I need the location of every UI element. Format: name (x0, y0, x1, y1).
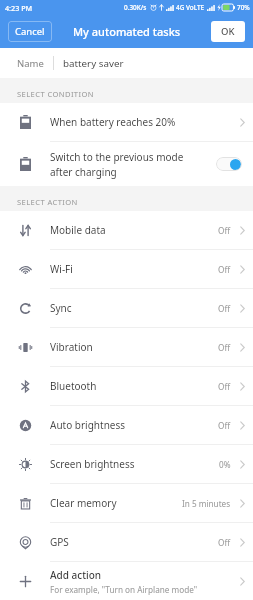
staticText: When battery reaches 20% (50, 115, 231, 129)
staticText: Screen brightness (50, 457, 219, 471)
staticText: Vibration (50, 340, 218, 354)
staticText: My automated tasks (73, 24, 181, 39)
staticText: 0.30K/s (124, 3, 147, 12)
button[interactable]: Clear memory (0, 484, 253, 522)
button[interactable]: Add action (0, 562, 253, 600)
button[interactable]: When battery reaches 20% (0, 103, 253, 141)
staticText: Add action (50, 568, 102, 582)
button[interactable]: Sync (0, 289, 253, 327)
staticText: GPS (50, 535, 218, 549)
staticText: Off (218, 303, 231, 314)
staticText: Name (17, 57, 44, 70)
staticText: Bluetooth (50, 379, 218, 393)
staticText: OK (221, 25, 235, 38)
button[interactable]: Switch to the previous mode (0, 142, 253, 186)
staticText: Off (218, 420, 231, 431)
staticText: In 5 minutes (182, 498, 231, 509)
button[interactable]: OK (211, 21, 245, 42)
staticText: 4:23 PM (5, 3, 33, 13)
staticText: Off (218, 264, 231, 275)
staticText: Switch to the previous mode (50, 150, 184, 164)
button[interactable]: Bluetooth (0, 367, 253, 405)
staticText: Off (218, 225, 231, 236)
button[interactable]: Name (0, 48, 253, 78)
button[interactable]: Cancel (8, 21, 52, 42)
staticText: 0% (219, 459, 231, 470)
staticText: Cancel (15, 25, 45, 38)
button[interactable]: Wi-Fi (0, 250, 253, 288)
staticText: after charging (50, 165, 117, 179)
staticText: Off (218, 381, 231, 392)
staticText: Mobile data (50, 223, 218, 237)
staticText: Off (218, 537, 231, 548)
button[interactable]: Mobile data (0, 211, 253, 249)
staticText: For example, "Turn on Airplane mode" (50, 584, 198, 595)
button[interactable]: GPS (0, 523, 253, 561)
staticText: Clear memory (50, 496, 182, 510)
staticText: Wi-Fi (50, 262, 218, 276)
staticText: 70% (237, 3, 250, 12)
staticText: Auto brightness (50, 418, 218, 432)
staticText: SELECT ACTION (17, 197, 78, 207)
button[interactable]: Vibration (0, 328, 253, 366)
staticText: 4G VoLTE (176, 3, 205, 12)
button[interactable]: Auto brightness (0, 406, 253, 444)
staticText: SELECT CONDITION (17, 89, 94, 99)
staticText: Off (218, 342, 231, 353)
button[interactable]: Screen brightness (0, 445, 253, 483)
button[interactable]: Switch to the previous mode after chargi… (216, 157, 242, 171)
staticText: Sync (50, 301, 218, 315)
staticText: battery saver (63, 57, 124, 70)
